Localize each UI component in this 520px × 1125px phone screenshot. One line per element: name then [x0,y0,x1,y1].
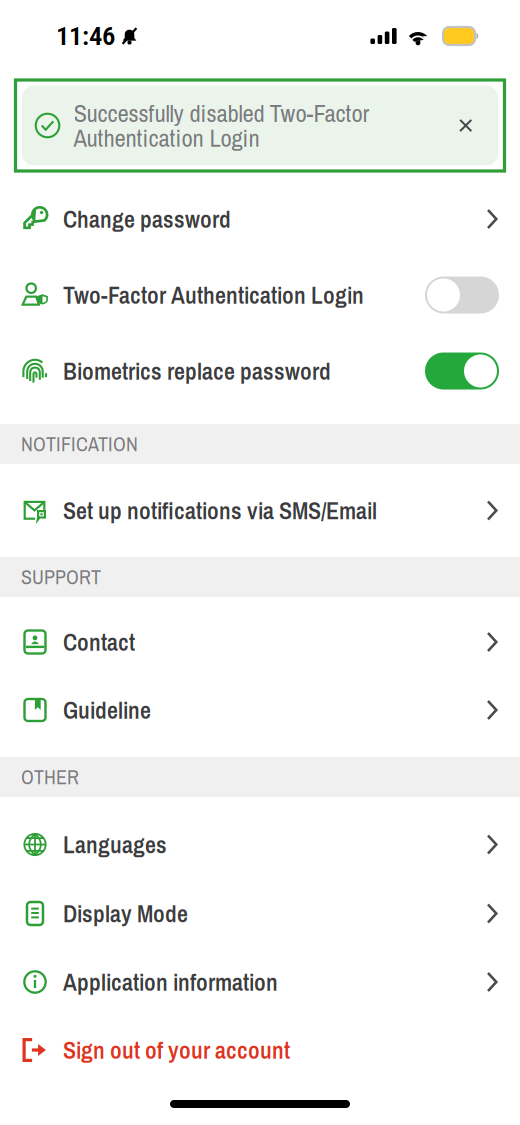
button[interactable]: Change password [0,181,520,257]
staticText: Sign out of your account [63,1034,290,1066]
staticText: Display Mode [63,897,188,930]
staticText: Successfully disabled Two-Factor [73,96,369,130]
button[interactable]: Set up notifications via SMS/Email [0,464,520,557]
button[interactable]: Guideline [0,676,520,744]
staticText: SUPPORT [21,563,101,590]
button[interactable]: Application information [0,948,520,1016]
staticText: Guideline [63,694,151,726]
staticText: Set up notifications via SMS/Email [63,494,377,527]
button[interactable]: Biometrics replace password [0,333,520,409]
staticText: NOTIFICATION [21,430,138,457]
staticText: Contact [63,626,135,658]
staticText: 11:46 [56,20,115,52]
button[interactable]: Two-Factor Authentication Login [0,257,520,333]
staticText: Authentication Login [73,121,259,154]
staticText: Languages [63,828,167,861]
staticText: Application information [63,966,278,998]
button[interactable]: Successfully disabled Two-Factor [15,80,504,171]
button[interactable]: Languages [0,810,520,879]
staticText: Two-Factor Authentication Login [63,279,364,311]
staticText: Biometrics replace password [63,355,331,387]
button[interactable]: Contact [0,608,520,676]
button[interactable]: Sign out of your account [0,1016,520,1084]
staticText: OTHER [21,763,79,790]
staticText: Change password [63,203,231,235]
button[interactable]: Display Mode [0,879,520,948]
